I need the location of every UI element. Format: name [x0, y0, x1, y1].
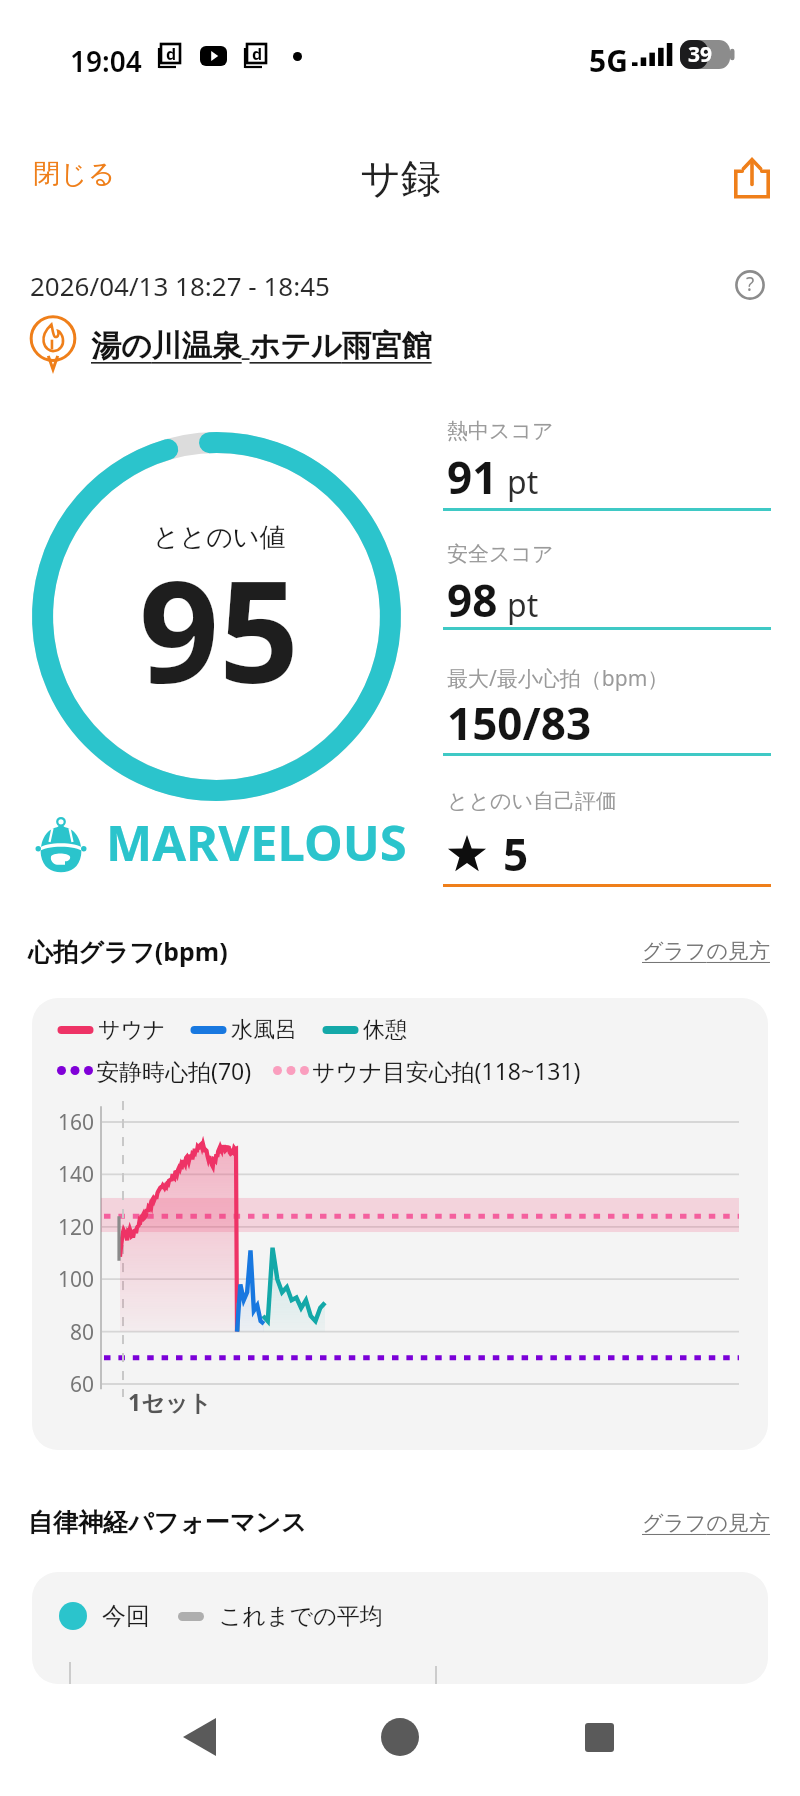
staticText: 95	[139, 533, 300, 724]
staticText: ととのい値	[153, 521, 286, 554]
button[interactable]: グラフの見方	[642, 938, 770, 964]
staticText: pt	[507, 583, 539, 627]
staticText: 水風呂	[231, 1016, 297, 1044]
staticText: 39	[688, 40, 713, 69]
staticText: 安静時心拍(70)	[96, 1055, 252, 1086]
button[interactable]: 湯の川温泉 ホテル雨宮館	[0, 317, 800, 371]
staticText: 160	[39, 1108, 94, 1137]
button[interactable]: Back	[166, 1704, 232, 1770]
staticText: 湯の川温泉 ホテル雨宮館	[91, 324, 432, 365]
staticText: 今回	[102, 1601, 150, 1631]
staticText: pt	[507, 460, 539, 504]
staticText: サウナ	[98, 1016, 166, 1044]
staticText: ?	[746, 271, 755, 297]
button[interactable]: Share	[704, 144, 800, 212]
staticText: 100	[39, 1265, 94, 1294]
staticText: サウナ目安心拍(118~131)	[312, 1055, 581, 1086]
staticText: 熱中スコア	[447, 418, 554, 444]
staticText: 5	[503, 824, 529, 884]
staticText: 休憩	[363, 1016, 407, 1044]
button[interactable]: グラフの見方	[642, 1510, 770, 1536]
staticText: 安全スコア	[447, 541, 554, 567]
staticText: 5G	[589, 40, 628, 81]
staticText: 120	[39, 1213, 94, 1242]
button[interactable]: Help	[730, 265, 770, 305]
staticText: 140	[39, 1160, 94, 1189]
staticText: MARVELOUS	[106, 809, 407, 876]
staticText: これまでの平均	[219, 1602, 383, 1631]
staticText: 60	[39, 1370, 94, 1399]
staticText: グラフの見方	[642, 938, 770, 964]
staticText: 最大/最小心拍（bpm）	[447, 664, 669, 693]
button[interactable]: Recents	[566, 1704, 632, 1770]
staticText: 心拍グラフ(bpm)	[28, 934, 228, 968]
staticText: グラフの見方	[642, 1510, 770, 1536]
staticText: サ録	[360, 153, 441, 203]
staticText: 80	[39, 1318, 94, 1347]
staticText: 1セット	[128, 1386, 212, 1417]
staticText: d	[166, 43, 177, 65]
staticText: 2026/04/13 18:27 - 18:45	[30, 268, 330, 303]
staticText: ととのい自己評価	[447, 788, 617, 814]
staticText: 自律神経パフォーマンス	[28, 1507, 307, 1538]
staticText: 91	[447, 447, 498, 507]
staticText: 閉じる	[33, 157, 116, 191]
button[interactable]: 閉じる	[0, 143, 149, 205]
staticText: 19:04	[70, 42, 142, 80]
staticText: d	[252, 43, 263, 65]
staticText: 150/83	[447, 693, 592, 753]
button[interactable]: Home	[367, 1704, 433, 1770]
staticText: 98	[447, 570, 498, 630]
